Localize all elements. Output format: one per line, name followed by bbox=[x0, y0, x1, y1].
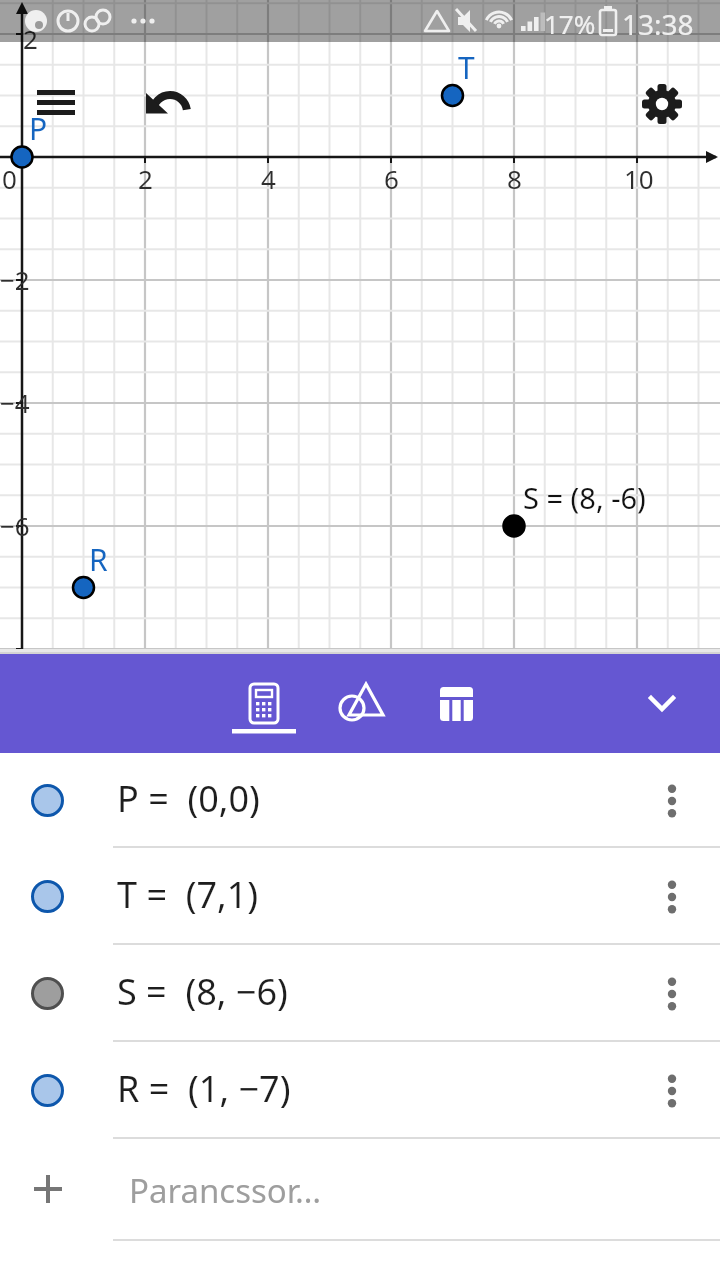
staticText: 10 bbox=[624, 161, 654, 196]
button[interactable] bbox=[424, 668, 488, 740]
button[interactable] bbox=[638, 80, 686, 128]
staticText: R = (1, −7) bbox=[117, 1064, 291, 1113]
staticText: 2 bbox=[23, 21, 38, 56]
button[interactable] bbox=[140, 80, 196, 128]
staticText: 13:38 bbox=[622, 5, 694, 43]
button[interactable]: R = (1, −7) bbox=[0, 1042, 720, 1139]
button[interactable]: T = (7,1) bbox=[0, 848, 720, 945]
button[interactable] bbox=[326, 668, 390, 740]
staticText: S = (8, −6) bbox=[117, 967, 288, 1016]
button[interactable]: S = (8, −6) bbox=[0, 945, 720, 1042]
button[interactable]: Parancssor… bbox=[0, 1139, 720, 1241]
staticText: T bbox=[458, 47, 475, 88]
button[interactable] bbox=[652, 974, 692, 1014]
staticText: S = (8, -6) bbox=[523, 478, 646, 517]
staticText: 0 bbox=[2, 161, 17, 196]
staticText: −6 bbox=[0, 508, 30, 543]
staticText: Parancssor… bbox=[129, 1168, 322, 1213]
staticText: 2 bbox=[138, 161, 153, 196]
staticText: 17% bbox=[544, 6, 596, 41]
button[interactable] bbox=[652, 781, 692, 821]
button[interactable] bbox=[28, 80, 84, 128]
staticText: 8 bbox=[507, 161, 522, 196]
button[interactable] bbox=[232, 668, 296, 740]
staticText: −2 bbox=[0, 262, 30, 297]
staticText: R bbox=[89, 539, 108, 580]
staticText: T = (7,1) bbox=[117, 870, 259, 919]
button[interactable] bbox=[652, 1071, 692, 1111]
staticText: P bbox=[29, 108, 48, 149]
staticText: P = (0,0) bbox=[117, 774, 260, 823]
button[interactable] bbox=[652, 877, 692, 917]
staticText: −4 bbox=[0, 385, 30, 420]
staticText: 6 bbox=[384, 161, 399, 196]
button[interactable]: P = (0,0) bbox=[0, 753, 720, 848]
button[interactable] bbox=[634, 676, 690, 732]
staticText: 4 bbox=[261, 161, 276, 196]
